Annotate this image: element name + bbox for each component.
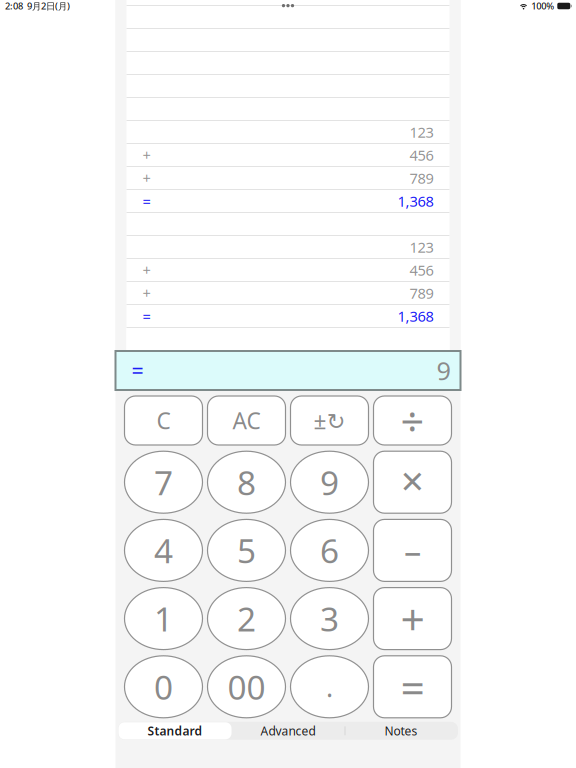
button[interactable]: 6 bbox=[290, 519, 368, 581]
staticText: 456 bbox=[409, 145, 433, 165]
staticText: AC bbox=[232, 405, 260, 435]
button[interactable]: Standard bbox=[118, 722, 231, 739]
staticText: 00 bbox=[227, 665, 265, 709]
button[interactable]: 9 bbox=[290, 451, 368, 513]
staticText: ✕ bbox=[399, 465, 425, 500]
staticText: 4 bbox=[154, 528, 173, 573]
staticText: 8 bbox=[237, 460, 256, 504]
staticText: = bbox=[131, 356, 143, 385]
staticText: 2 bbox=[237, 596, 256, 641]
staticText: 0 bbox=[154, 665, 173, 709]
button[interactable]: Advanced bbox=[231, 722, 344, 739]
staticText: 6 bbox=[320, 528, 339, 573]
staticText: + bbox=[400, 590, 424, 647]
button[interactable]: ÷ bbox=[373, 396, 451, 445]
button[interactable]: 1 bbox=[124, 588, 202, 650]
button[interactable]: . bbox=[290, 656, 368, 718]
staticText: + bbox=[142, 260, 150, 280]
staticText: ÷ bbox=[400, 393, 424, 448]
staticText: Standard bbox=[147, 723, 202, 739]
button[interactable]: 3 bbox=[290, 588, 368, 650]
staticText: 5 bbox=[237, 528, 256, 573]
staticText: 123 bbox=[409, 237, 433, 257]
staticText: 1,368 bbox=[397, 306, 433, 326]
staticText: + bbox=[142, 168, 150, 188]
staticText: 1,368 bbox=[397, 191, 433, 211]
button[interactable]: = bbox=[373, 656, 451, 718]
button[interactable]: 2 bbox=[207, 588, 285, 650]
button[interactable]: 0 bbox=[124, 656, 202, 718]
button[interactable]: C bbox=[124, 396, 202, 445]
staticText: 3 bbox=[320, 596, 339, 641]
button[interactable]: 4 bbox=[124, 519, 202, 581]
button[interactable]: 5 bbox=[207, 519, 285, 581]
staticText: = bbox=[142, 191, 150, 211]
staticText: 9 bbox=[320, 460, 339, 504]
button[interactable]: AC bbox=[207, 396, 285, 445]
staticText: Notes bbox=[384, 723, 417, 739]
button[interactable]: ✕ bbox=[373, 451, 451, 513]
staticText: 2:08 9月2日(月) bbox=[5, 0, 70, 12]
staticText: 100% bbox=[531, 0, 554, 12]
staticText: + bbox=[142, 145, 150, 165]
staticText: + bbox=[142, 283, 150, 303]
button[interactable]: – bbox=[373, 519, 451, 581]
staticText: 789 bbox=[409, 168, 433, 188]
staticText: – bbox=[404, 527, 421, 573]
staticText: = bbox=[142, 306, 150, 326]
button[interactable]: Notes bbox=[344, 722, 457, 739]
button[interactable]: 00 bbox=[207, 656, 285, 718]
button[interactable]: + bbox=[373, 588, 451, 650]
staticText: 1 bbox=[154, 596, 173, 641]
staticText: Advanced bbox=[260, 723, 315, 739]
button[interactable]: 8 bbox=[207, 451, 285, 513]
staticText: = bbox=[400, 658, 424, 715]
button[interactable]: ±↻ bbox=[290, 396, 368, 445]
staticText: C bbox=[156, 405, 170, 435]
staticText: 7 bbox=[154, 460, 173, 504]
staticText: 789 bbox=[409, 283, 433, 303]
staticText: 9 bbox=[436, 354, 450, 387]
staticText: 456 bbox=[409, 260, 433, 280]
button[interactable]: 7 bbox=[124, 451, 202, 513]
staticText: 123 bbox=[409, 122, 433, 142]
staticText: . bbox=[326, 669, 333, 704]
staticText: ±↻ bbox=[313, 405, 345, 435]
